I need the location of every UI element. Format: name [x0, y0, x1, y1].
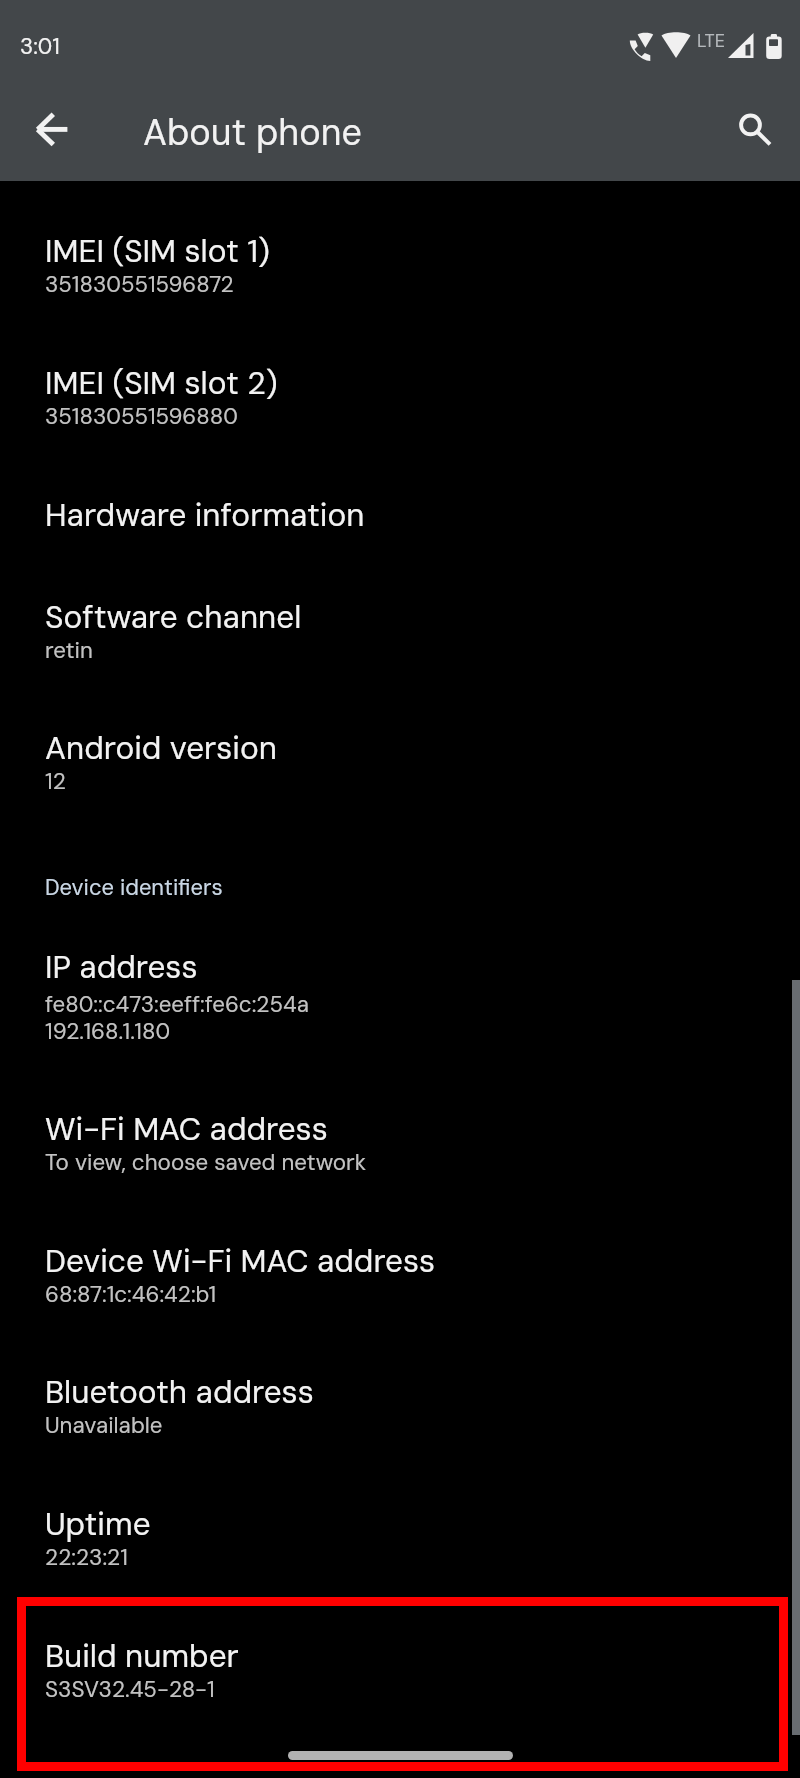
staticText: fe80::c473:eeff:fe6c:254a	[45, 990, 309, 1019]
button[interactable]: Wi-Fi MAC address	[0, 1059, 800, 1191]
button[interactable]: Search	[703, 82, 799, 178]
staticText: Bluetooth address	[45, 1372, 314, 1413]
staticText: IMEI (SIM slot 1)	[45, 231, 270, 272]
button[interactable]: IMEI (SIM slot 1)	[0, 181, 800, 313]
button[interactable]: Hardware information	[0, 445, 800, 547]
staticText: 12	[45, 767, 66, 796]
staticText: Device identifiers	[45, 873, 223, 897]
staticText: Uptime	[45, 1504, 151, 1545]
staticText: IMEI (SIM slot 2)	[45, 363, 278, 404]
staticText: Software channel	[45, 597, 302, 638]
staticText: Build number	[45, 1636, 239, 1677]
button[interactable]: IP address	[0, 897, 800, 1059]
staticText: About phone	[143, 109, 362, 156]
staticText: To view, choose saved network	[45, 1148, 367, 1177]
staticText: IP address	[45, 947, 198, 988]
button[interactable]: IMEI (SIM slot 2)	[0, 313, 800, 445]
staticText: Unavailable	[45, 1411, 163, 1440]
staticText: 351830551596872	[45, 270, 234, 299]
staticText: Hardware information	[45, 495, 365, 536]
staticText: S3SV32.45-28-1	[45, 1675, 215, 1704]
staticText: retin	[45, 636, 93, 665]
staticText: Android version	[45, 728, 277, 769]
button[interactable]: Software channel	[0, 547, 800, 678]
staticText: 68:87:1c:46:42:b1	[45, 1280, 217, 1309]
button[interactable]: Bluetooth address	[0, 1322, 800, 1454]
staticText: 22:23:21	[45, 1543, 128, 1572]
button[interactable]: Back	[4, 82, 100, 178]
staticText: Wi-Fi MAC address	[45, 1109, 328, 1150]
button[interactable]: Uptime	[0, 1454, 800, 1586]
staticText: Device Wi-Fi MAC address	[45, 1241, 436, 1282]
staticText: 351830551596880	[45, 402, 238, 431]
staticText: LTE	[697, 29, 725, 52]
staticText: 3:01	[20, 32, 60, 61]
button[interactable]: Build number	[0, 1586, 800, 1718]
button[interactable]: Device Wi-Fi MAC address	[0, 1191, 800, 1322]
staticText: 192.168.1.180	[45, 1017, 171, 1046]
button[interactable]: Android version	[0, 678, 800, 820]
